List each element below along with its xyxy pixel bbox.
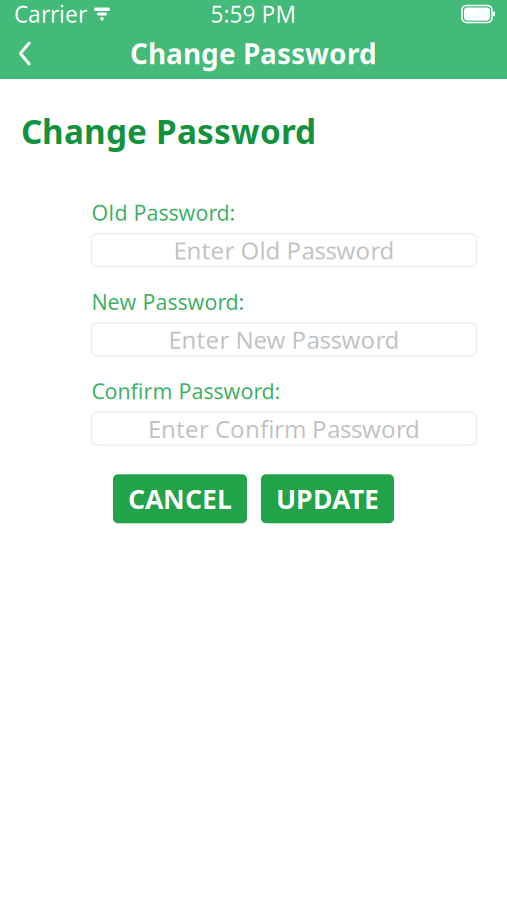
staticText: 5:59 PM: [210, 0, 296, 29]
staticText: UPDATE: [276, 481, 379, 516]
staticText: Confirm Password:: [91, 377, 280, 405]
staticText: Change Password: [21, 109, 316, 153]
button[interactable]: UPDATE: [261, 474, 394, 523]
button[interactable]: Enter Confirm Password: [91, 412, 476, 445]
staticText: Enter Confirm Password: [148, 413, 420, 445]
staticText: Old Password:: [91, 198, 235, 227]
staticText: Enter Old Password: [173, 234, 394, 266]
staticText: Carrier: [14, 0, 87, 29]
staticText: Change Password: [130, 35, 377, 72]
staticText: Enter New Password: [168, 323, 399, 355]
button[interactable]: CANCEL: [113, 474, 247, 523]
staticText: New Password:: [91, 288, 244, 316]
staticText: CANCEL: [128, 481, 232, 516]
button[interactable]: Enter Old Password: [91, 234, 476, 267]
button[interactable]: Back: [0, 28, 50, 79]
button[interactable]: Enter New Password: [91, 323, 476, 356]
